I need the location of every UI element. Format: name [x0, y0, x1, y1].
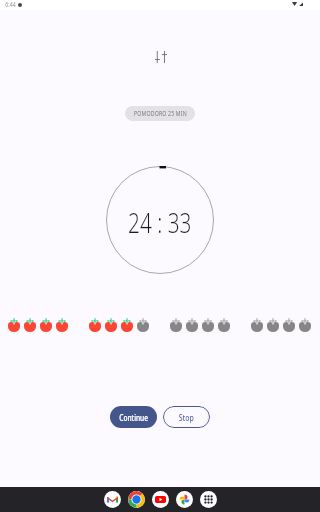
button[interactable]: Chrome — [128, 491, 145, 508]
staticText: Stop — [179, 412, 194, 424]
button[interactable]: Stop — [163, 406, 210, 428]
staticText: Continue — [119, 412, 149, 424]
button[interactable]: Timer settings — [148, 44, 173, 69]
button[interactable]: YouTube — [152, 491, 169, 508]
button[interactable]: Continue — [110, 406, 157, 428]
button[interactable]: Gmail — [104, 491, 121, 508]
staticText: 6:44 — [5, 0, 16, 9]
button[interactable]: POMODORO 25 MIN — [125, 106, 195, 121]
staticText: POMODORO 25 MIN — [134, 109, 187, 117]
button[interactable]: All apps — [200, 491, 217, 508]
staticText: 24 : 33 — [128, 204, 192, 241]
button[interactable]: Photos — [176, 491, 193, 508]
